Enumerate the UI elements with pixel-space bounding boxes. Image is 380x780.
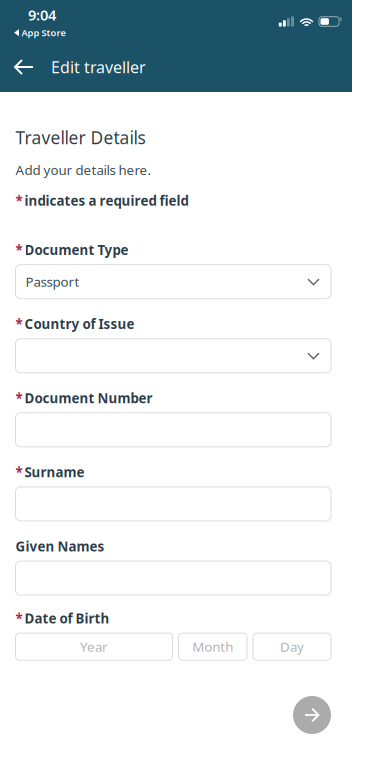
staticText: Surname [24, 463, 84, 481]
staticText: Day [280, 638, 304, 655]
staticText: 9:04 [28, 5, 56, 24]
staticText: * [15, 389, 22, 407]
staticText: * [15, 609, 22, 627]
staticText: Country of Issue [24, 315, 134, 333]
staticText: Add your details here. [15, 161, 151, 179]
button[interactable]: Next [293, 696, 331, 734]
staticText: Date of Birth [24, 609, 109, 627]
staticText: Month [192, 638, 233, 655]
button[interactable]: Back [0, 50, 51, 84]
staticText: App Store [21, 26, 65, 39]
staticText: Passport [25, 273, 79, 290]
staticText: Edit traveller [51, 56, 146, 78]
staticText: * [15, 241, 22, 259]
staticText: Traveller Details [15, 126, 145, 149]
staticText: indicates a required field [24, 192, 188, 209]
staticText: Document Type [24, 241, 128, 259]
staticText: Year [80, 638, 108, 655]
staticText: * [15, 192, 22, 209]
staticText: * [15, 463, 22, 481]
staticText: * [15, 315, 22, 333]
staticText: Given Names [15, 537, 104, 555]
staticText: Document Number [24, 389, 152, 407]
